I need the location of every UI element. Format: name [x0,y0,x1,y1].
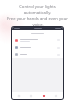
button[interactable] [12,44,63,51]
button[interactable]: Home [14,92,24,99]
button[interactable] [12,36,63,44]
button[interactable]: Devices [26,92,36,99]
staticText: voice. [32,22,44,28]
button[interactable]: Routines [39,92,49,99]
staticText: Control your lights automatically. [5,4,70,16]
button[interactable] [12,51,63,58]
staticText: Free your hands and even your [7,16,68,22]
button[interactable]: Settings [51,92,61,99]
